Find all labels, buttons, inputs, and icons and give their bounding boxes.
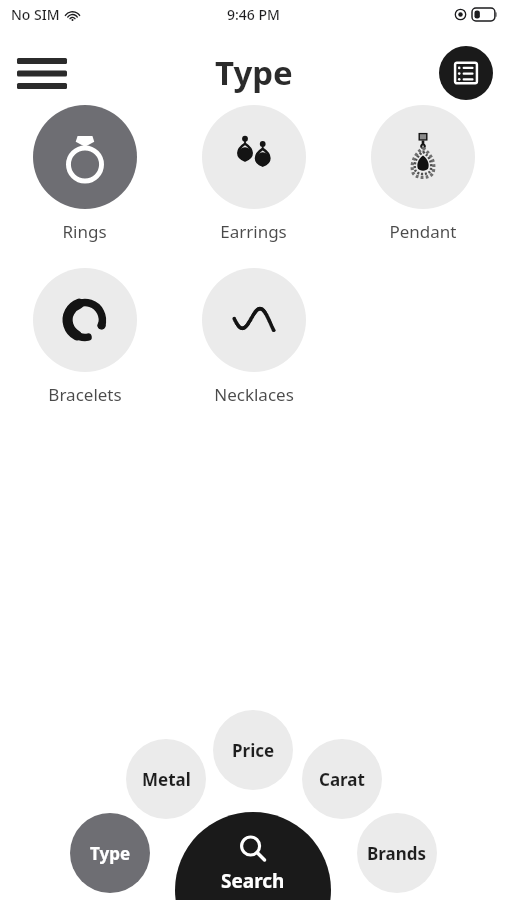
button[interactable]: Metal — [126, 739, 206, 819]
staticText: Type — [90, 842, 131, 865]
button[interactable]: Type — [70, 813, 150, 893]
staticText: Type — [215, 50, 293, 95]
staticText: Rings — [62, 220, 107, 243]
button[interactable]: Bracelets — [0, 268, 169, 406]
button[interactable]: Pendant — [338, 105, 507, 243]
button[interactable]: Search — [175, 812, 331, 900]
staticText: Brands — [367, 842, 427, 865]
staticText: Search — [221, 868, 285, 894]
staticText: Price — [232, 739, 275, 762]
staticText: Pendant — [389, 220, 457, 243]
button[interactable]: Price — [213, 710, 293, 790]
button[interactable]: Necklaces — [169, 268, 338, 406]
staticText: Carat — [319, 768, 365, 791]
button[interactable]: Earrings — [169, 105, 338, 243]
button[interactable]: Carat — [302, 739, 382, 819]
staticText: Bracelets — [48, 383, 122, 406]
staticText: Necklaces — [214, 383, 294, 406]
staticText: Earrings — [220, 220, 287, 243]
button[interactable]: Rings — [0, 105, 169, 243]
button[interactable]: Menu — [14, 50, 70, 96]
staticText: 9:46 PM — [227, 5, 280, 24]
button[interactable]: Brands — [357, 813, 437, 893]
button[interactable]: List view — [439, 46, 493, 100]
staticText: Metal — [142, 768, 191, 791]
staticText: No SIM — [11, 5, 60, 24]
